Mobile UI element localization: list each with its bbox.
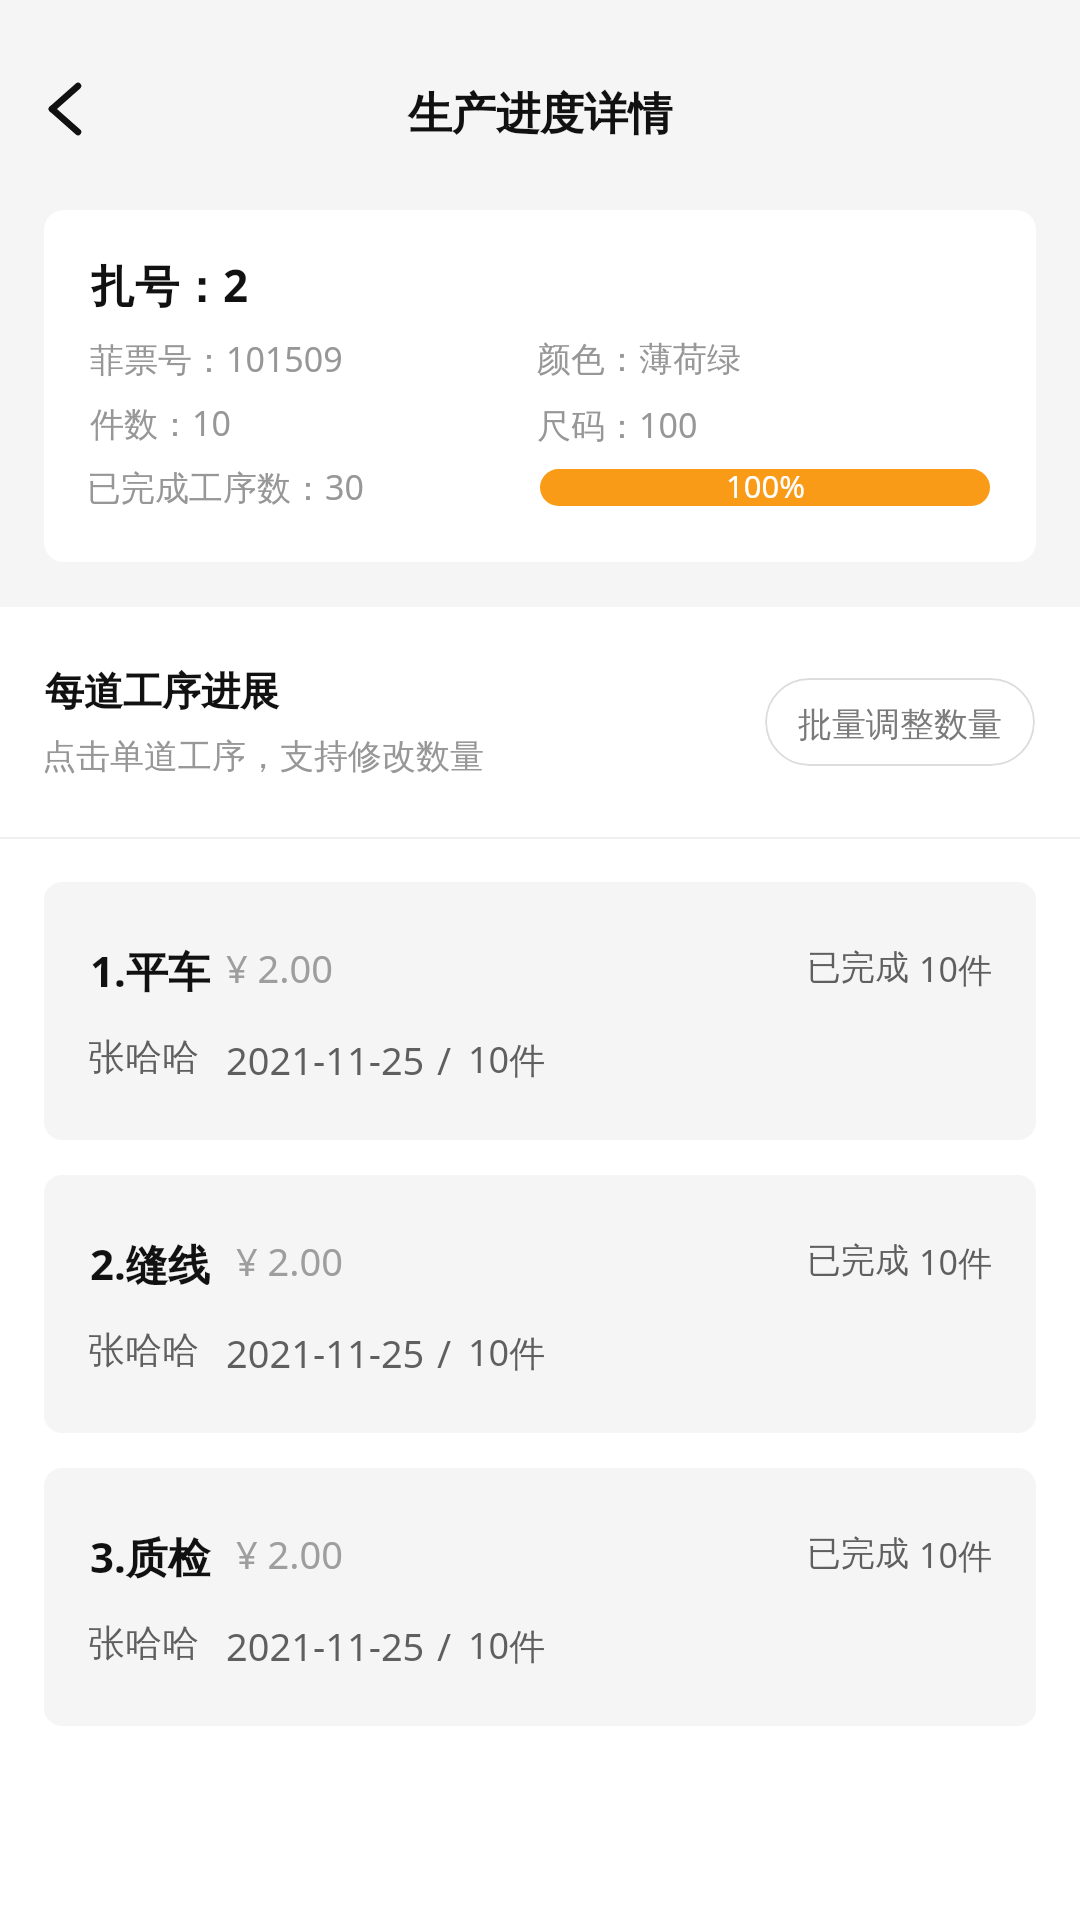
staticText: 已完成 [807, 946, 909, 989]
staticText: / [437, 1327, 452, 1379]
staticText: 扎号：2 [91, 255, 249, 315]
staticText: 2.缝线 [90, 1235, 210, 1292]
staticText: 2021-11-25 [226, 1327, 425, 1379]
button[interactable]: 1.平车 [44, 882, 1036, 1140]
staticText: 10件 [468, 1035, 546, 1084]
staticText: 3.质检 [90, 1528, 210, 1585]
staticText: 点击单道工序，支持修改数量 [42, 735, 484, 778]
staticText: 10件 [919, 946, 992, 992]
button[interactable]: Back [22, 77, 86, 141]
staticText: 张哈哈 [88, 1327, 199, 1374]
staticText: 100% [726, 469, 805, 502]
staticText: ¥ 2.00 [236, 1235, 344, 1287]
staticText: ¥ 2.00 [226, 942, 334, 994]
staticText: 生产进度详情 [408, 87, 672, 142]
staticText: 已完成 [807, 1239, 909, 1282]
button[interactable]: 批量调整数量 [765, 678, 1035, 766]
button[interactable]: 扎号：2 [44, 210, 1036, 562]
staticText: 2021-11-25 [226, 1034, 425, 1086]
staticText: ¥ 2.00 [236, 1528, 344, 1580]
staticText: 1.平车 [90, 942, 210, 999]
staticText: 10件 [919, 1239, 992, 1285]
staticText: / [437, 1034, 452, 1086]
button[interactable]: 3.质检 [44, 1468, 1036, 1726]
staticText: 10件 [468, 1621, 546, 1670]
staticText: 件数：10 [90, 400, 231, 446]
staticText: 2021-11-25 [226, 1620, 425, 1672]
staticText: 10件 [468, 1328, 546, 1377]
staticText: 批量调整数量 [798, 703, 1002, 746]
staticText: 尺码：100 [537, 402, 698, 448]
staticText: 每道工序进展 [45, 667, 279, 716]
staticText: 张哈哈 [88, 1034, 199, 1081]
staticText: 已完成工序数：30 [87, 464, 364, 510]
button[interactable]: 2.缝线 [44, 1175, 1036, 1433]
staticText: 10件 [919, 1532, 992, 1578]
staticText: 菲票号：101509 [90, 336, 343, 382]
staticText: 颜色：薄荷绿 [537, 338, 741, 381]
staticText: / [437, 1620, 452, 1672]
staticText: 已完成 [807, 1532, 909, 1575]
staticText: 张哈哈 [88, 1620, 199, 1667]
